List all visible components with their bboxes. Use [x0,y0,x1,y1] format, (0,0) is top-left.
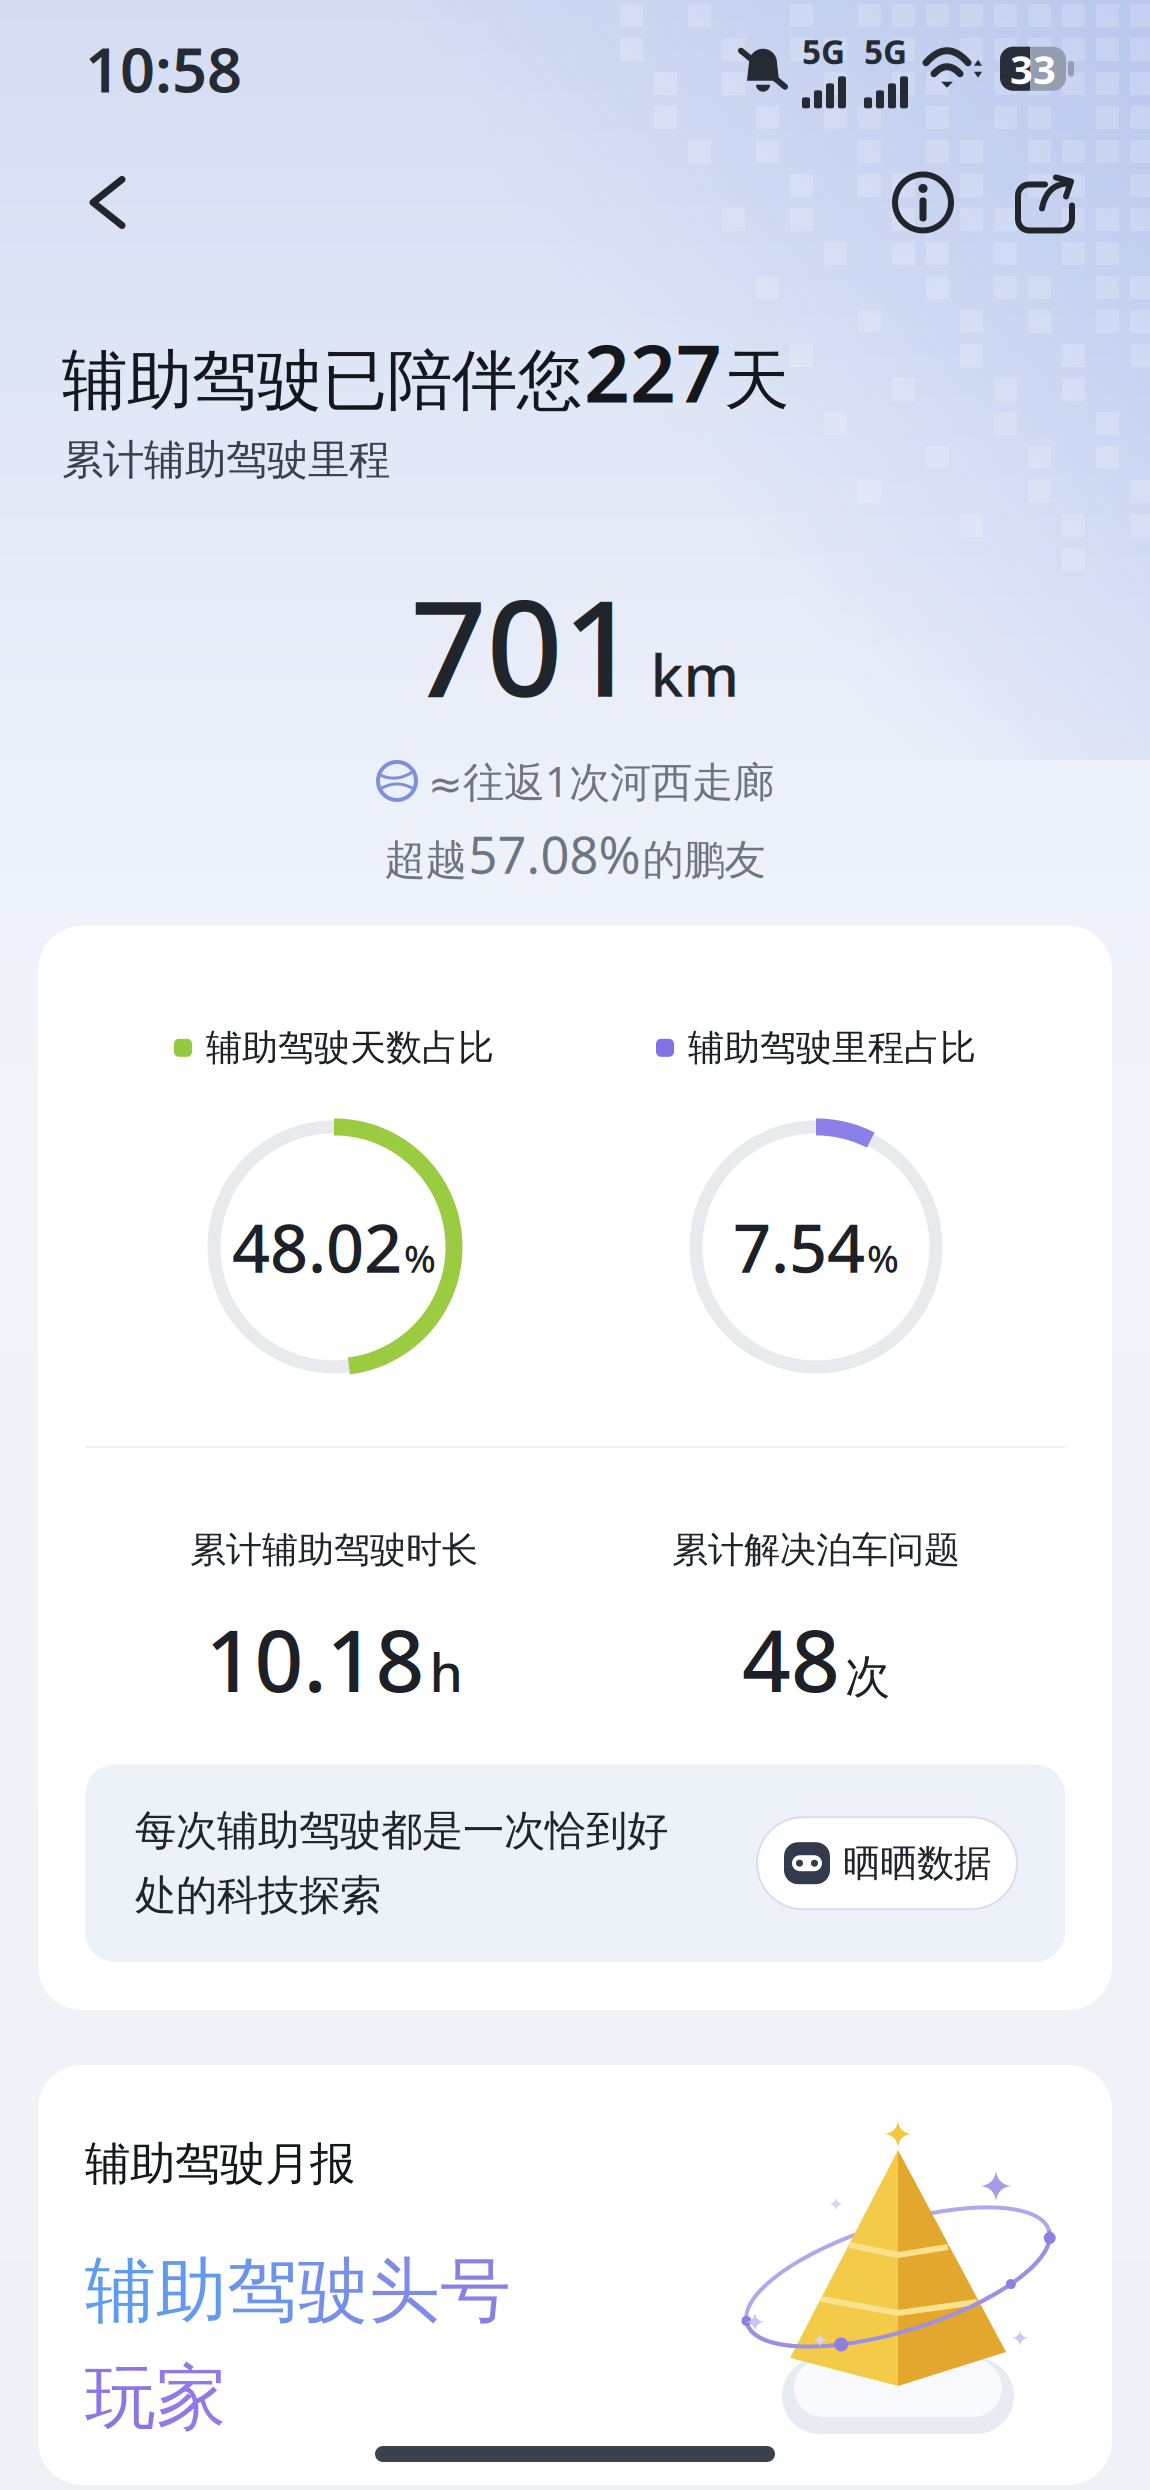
staticText: 48 [742,1602,840,1715]
staticText: 晒晒数据 [843,1840,991,1886]
staticText: 5G [802,29,845,73]
staticText: 号 [440,2248,511,2334]
staticText: 辅助驾驶月报 [85,2136,355,2192]
staticText: km [650,635,739,713]
staticText: 驶 [298,2248,369,2334]
staticText: 累计解决泊车问题 [672,1528,960,1572]
staticText: 10.18 [205,1602,424,1715]
staticText: % [404,1233,436,1283]
staticText: 5G [864,29,907,73]
staticText: 超越 [384,835,466,885]
staticText: 33 [1010,42,1056,95]
staticText: 玩 [85,2354,156,2441]
staticText: 家 [156,2354,227,2441]
staticText: 每次辅助驾驶都是一次恰到好 [135,1805,668,1856]
staticText: 48.02 [232,1203,402,1291]
staticText: % [867,1233,899,1283]
staticText: 累计辅助驾驶里程 [62,435,390,485]
staticText: 辅助驾驶里程占比 [688,1026,976,1070]
staticText: 辅 [85,2248,156,2334]
staticText: ≈往返1次河西走廊 [428,753,774,808]
staticText: 的鹏友 [642,835,765,885]
staticText: 辅助驾驶已陪伴您 [62,341,582,421]
staticText: 累计辅助驾驶时长 [190,1528,478,1572]
button[interactable]: Back [88,175,128,229]
staticText: 头 [369,2248,440,2334]
staticText: 处的科技探索 [135,1870,381,1921]
staticText: 驾 [227,2248,298,2334]
staticText: 助 [156,2248,227,2334]
staticText: h [429,1636,462,1707]
staticText: 227 [584,318,722,425]
staticText: 10:58 [85,28,242,109]
staticText: 辅助驾驶天数占比 [206,1026,494,1070]
staticText: 7.54 [733,1203,865,1291]
button[interactable]: 晒晒数据 [757,1817,1017,1909]
staticText: 701 [410,556,638,734]
staticText: 次 [845,1649,890,1705]
staticText: 57.08% [468,820,640,888]
staticText: 天 [724,341,789,421]
button[interactable]: Info [892,171,954,233]
button[interactable]: Share [1014,171,1076,233]
